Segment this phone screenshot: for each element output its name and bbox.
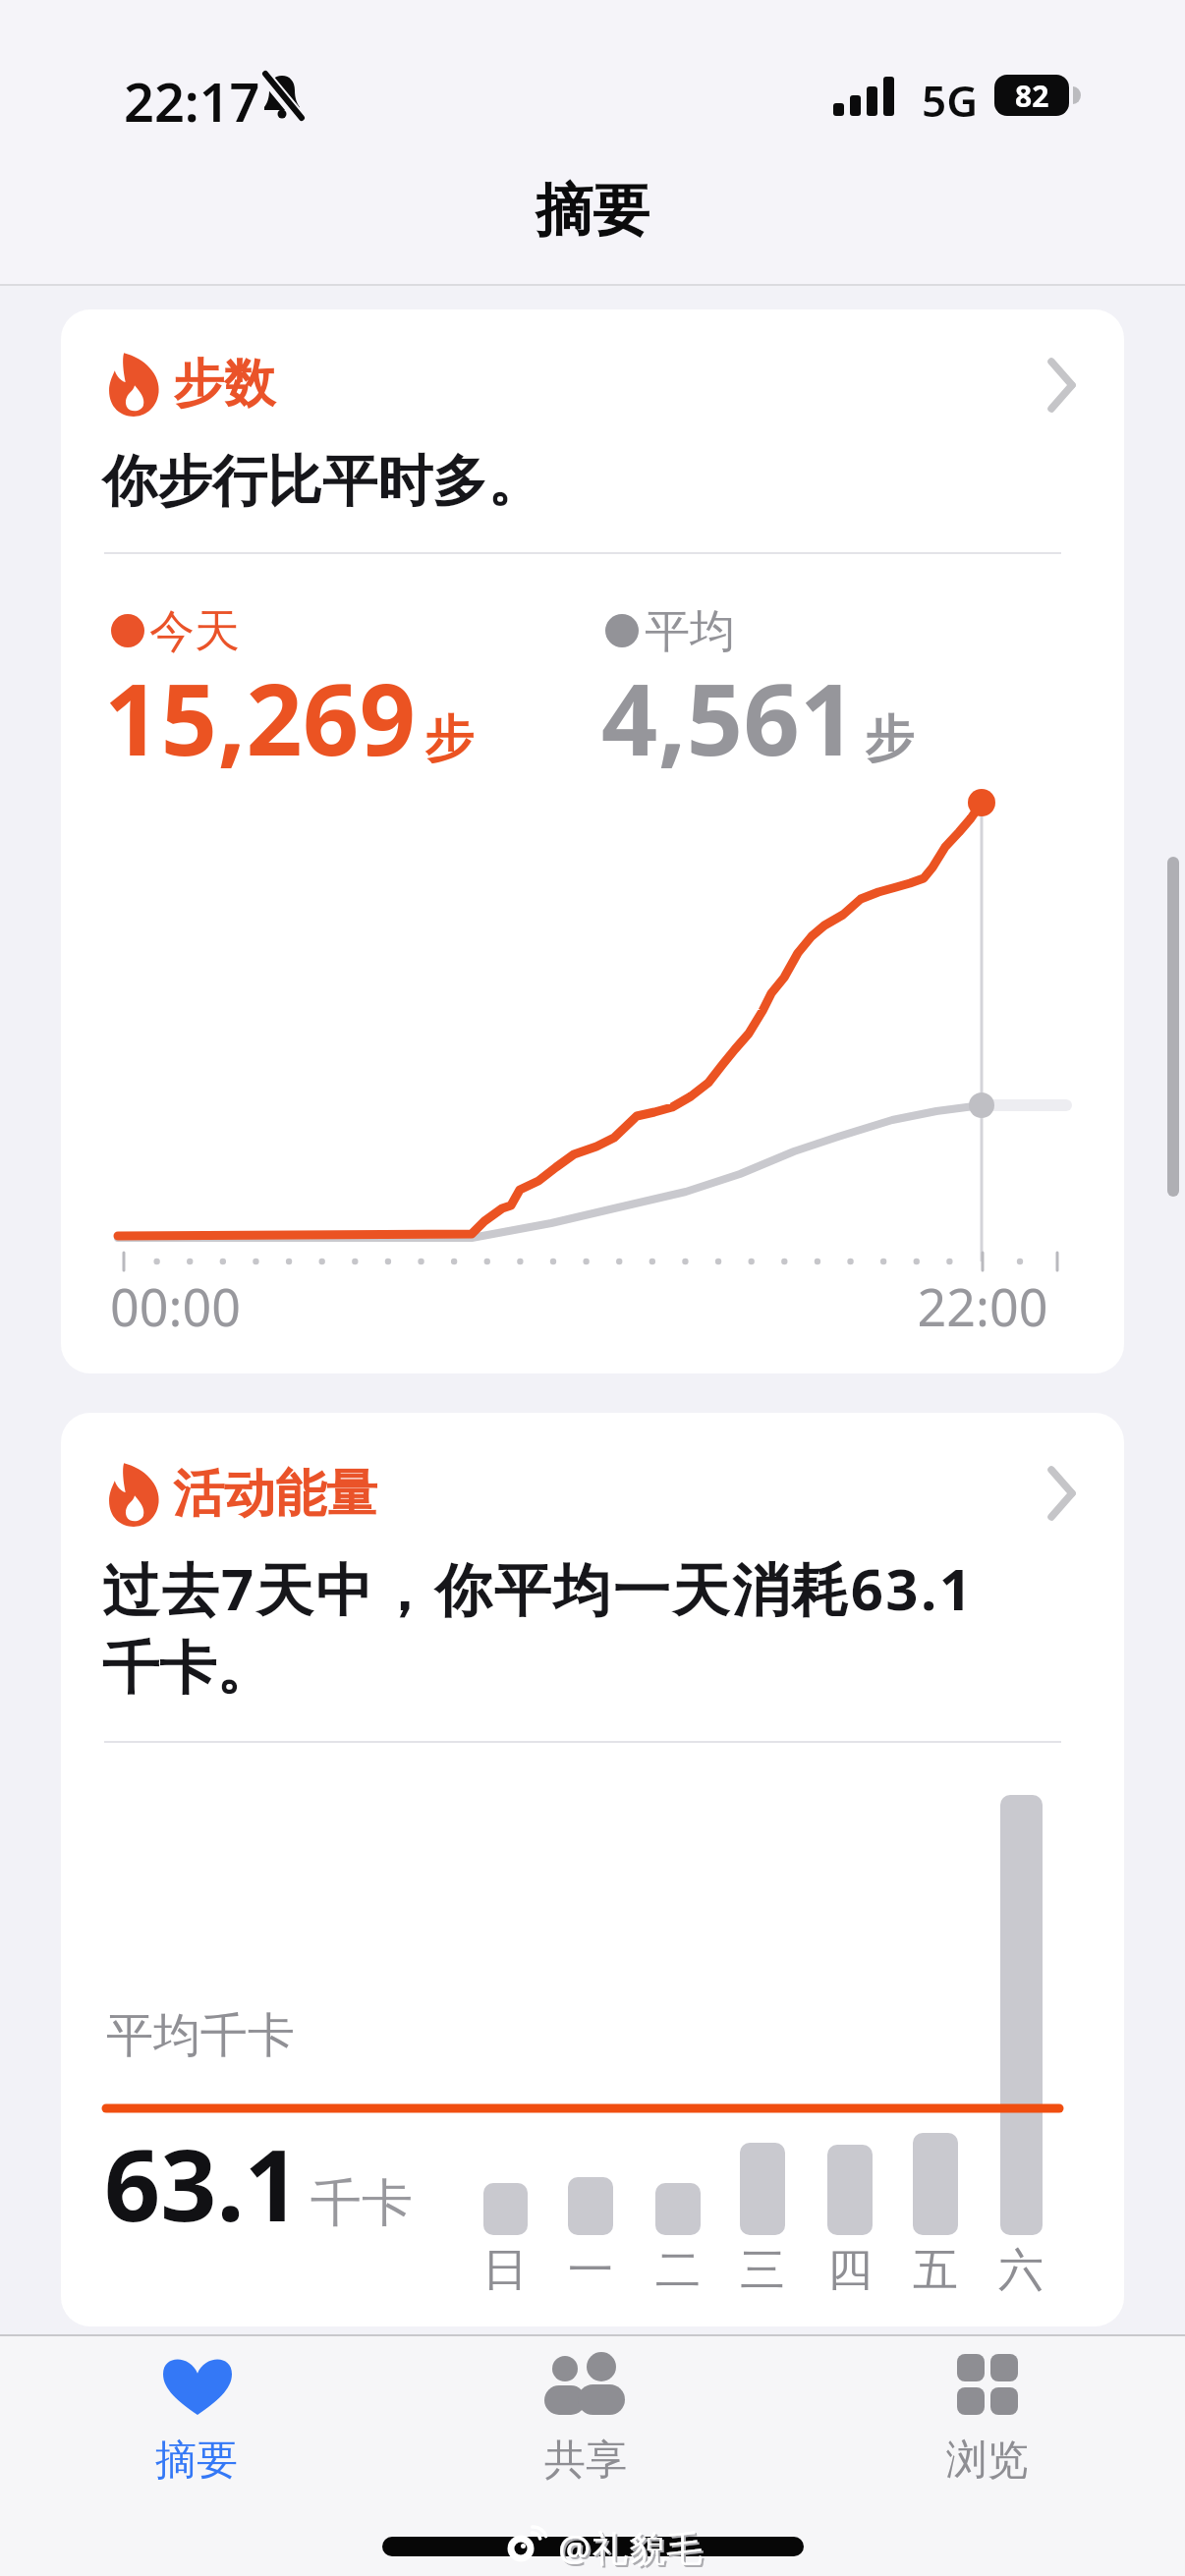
staticText: 过去7天中，你平均一天消耗63.1 (102, 1549, 975, 1627)
staticText: 22:00 (904, 1271, 1061, 1341)
staticText: 共享 (527, 2435, 645, 2487)
button[interactable] (61, 1413, 1124, 2326)
staticText: 千卡。 (102, 1633, 273, 1705)
staticText: 摘要 (0, 175, 1185, 247)
staticText: 步 (424, 708, 474, 770)
staticText: 步 (865, 708, 914, 770)
button[interactable]: 浏览 (919, 2338, 1056, 2486)
staticText: 六 (991, 2242, 1050, 2299)
staticText: 平均千卡 (106, 2006, 295, 2065)
staticText: @礼貌毛 (558, 2522, 705, 2572)
staticText: 活动能量 (173, 1462, 377, 1527)
staticText: 22:17 (124, 65, 260, 138)
staticText: 你步行比平时多。 (102, 447, 542, 517)
staticText: 5G (922, 71, 979, 130)
staticText: @礼貌毛 (560, 2524, 706, 2574)
staticText: 00:00 (110, 1271, 241, 1341)
staticText: 63.1 (104, 2116, 301, 2250)
staticText: 摘要 (138, 2435, 255, 2487)
button[interactable]: 摘要 (128, 2338, 265, 2486)
staticText: 浏览 (929, 2435, 1046, 2487)
staticText: 千卡 (310, 2171, 413, 2236)
staticText: 一 (561, 2242, 620, 2299)
staticText: 日 (476, 2242, 535, 2299)
staticText: 步数 (173, 352, 275, 417)
staticText: 4,561 (601, 650, 857, 784)
button[interactable] (61, 309, 1124, 1373)
staticText: 今天 (149, 603, 240, 660)
staticText: 四 (820, 2242, 879, 2299)
staticText: 15,269 (104, 650, 417, 784)
staticText: 二 (649, 2242, 707, 2299)
staticText: 三 (733, 2242, 792, 2299)
staticText: 五 (906, 2242, 965, 2299)
staticText: 平均 (645, 603, 735, 660)
staticText: 82 (1015, 76, 1049, 116)
button[interactable]: 共享 (517, 2338, 654, 2486)
